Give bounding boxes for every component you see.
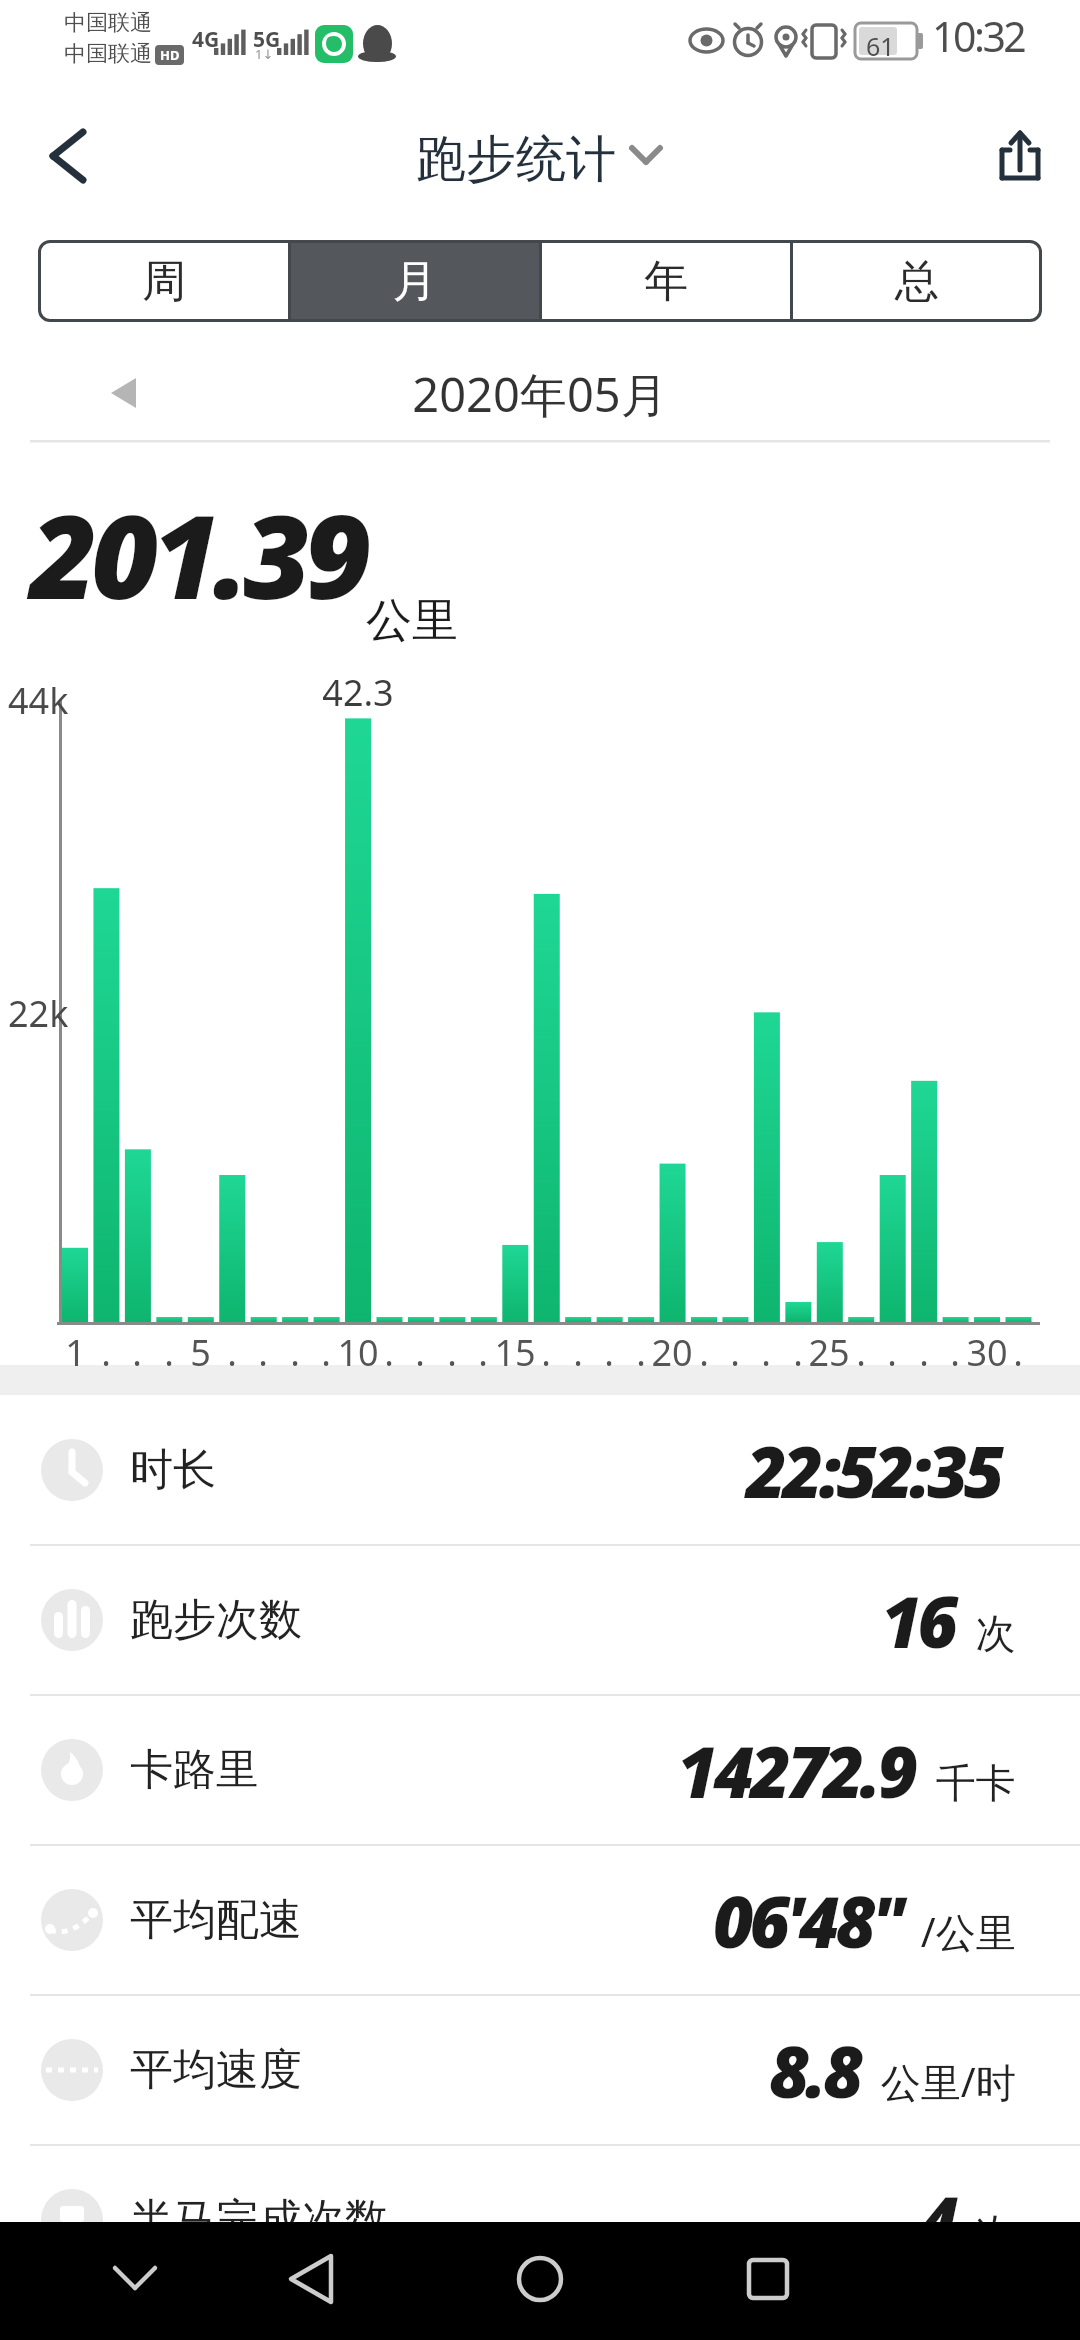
staticText: 10 <box>337 1328 379 1377</box>
staticText: . <box>699 1328 709 1377</box>
button[interactable]: 周 <box>38 240 289 322</box>
staticText: /公里 <box>900 1904 1016 1959</box>
staticText: . <box>1013 1328 1023 1377</box>
staticText: . <box>761 1328 771 1377</box>
staticText: 5G <box>253 25 281 54</box>
staticText: 14272.9 <box>677 1723 915 1818</box>
button[interactable]: 半马完成次数 <box>0 2145 1080 2295</box>
staticText: . <box>793 1328 803 1377</box>
staticText: 卡路里 <box>130 1743 259 1797</box>
staticText: 跑步次数 <box>130 1593 302 1647</box>
staticText: 次 <box>955 1604 1016 1659</box>
staticText: 15 <box>494 1328 536 1377</box>
staticText: 时长 <box>130 1443 216 1497</box>
staticText: 20 <box>651 1328 693 1377</box>
staticText: 25 <box>808 1328 850 1377</box>
button[interactable]: 月 <box>289 240 540 322</box>
staticText: 月 <box>393 254 437 309</box>
staticText: 平均配速 <box>130 1893 302 1947</box>
button[interactable]: 总 <box>791 240 1042 322</box>
staticText: 次 <box>955 2204 1016 2259</box>
staticText: . <box>101 1328 111 1377</box>
staticText: . <box>919 1328 929 1377</box>
staticText: 1 <box>65 1328 86 1377</box>
staticText: . <box>573 1328 583 1377</box>
staticText: 201.39 <box>30 475 366 633</box>
staticText: 4G <box>192 25 220 54</box>
button[interactable] <box>985 118 1060 198</box>
button[interactable] <box>30 115 120 200</box>
staticText: . <box>164 1328 174 1377</box>
staticText: 年 <box>644 254 688 309</box>
staticText: . <box>856 1328 866 1377</box>
staticText: . <box>950 1328 960 1377</box>
staticText: . <box>541 1328 551 1377</box>
button[interactable]: 卡路里 <box>0 1695 1080 1845</box>
staticText: 中国联通 <box>64 40 152 68</box>
staticText: 06'48" <box>713 1873 900 1968</box>
staticText: 22k <box>8 989 69 1038</box>
staticText: 42.3 <box>322 668 394 717</box>
staticText: . <box>290 1328 300 1377</box>
button[interactable]: 平均配速 <box>0 1845 1080 1995</box>
staticText: . <box>132 1328 142 1377</box>
staticText: . <box>636 1328 646 1377</box>
staticText: 中国联通 <box>64 9 152 37</box>
staticText: 16 <box>881 1573 955 1668</box>
button[interactable] <box>270 2248 350 2308</box>
button[interactable] <box>500 2248 580 2308</box>
staticText: 公里 <box>366 592 458 650</box>
staticText: 4 <box>918 2173 955 2268</box>
staticText: 半马完成次数 <box>130 2193 388 2247</box>
staticText: 2020年05月 <box>412 362 668 426</box>
staticText: HD <box>160 46 180 64</box>
button[interactable]: 年 <box>540 240 791 322</box>
staticText: . <box>447 1328 457 1377</box>
staticText: . <box>415 1328 425 1377</box>
staticText: 8.8 <box>769 2023 860 2118</box>
staticText: . <box>730 1328 740 1377</box>
staticText: 44k <box>8 676 69 725</box>
staticText: 61 <box>866 29 895 63</box>
staticText: 千卡 <box>915 1754 1016 1809</box>
staticText: 平均速度 <box>130 2043 302 2097</box>
staticText: . <box>258 1328 268 1377</box>
staticText: . <box>321 1328 331 1377</box>
staticText: . <box>478 1328 488 1377</box>
staticText: . <box>384 1328 394 1377</box>
button[interactable] <box>90 365 160 425</box>
staticText: 总 <box>895 254 939 309</box>
staticText: 5 <box>190 1328 211 1377</box>
button[interactable]: 平均速度 <box>0 1995 1080 2145</box>
button[interactable] <box>730 2248 810 2308</box>
staticText: 跑步统计 <box>416 128 616 191</box>
staticText: . <box>887 1328 897 1377</box>
staticText: . <box>604 1328 614 1377</box>
staticText: 公里/时 <box>860 2054 1016 2109</box>
button[interactable]: 跑步次数 <box>0 1545 1080 1695</box>
staticText: 周 <box>142 254 186 309</box>
staticText: 1↓ <box>255 45 274 63</box>
button[interactable] <box>95 2248 175 2308</box>
staticText: . <box>227 1328 237 1377</box>
button[interactable]: 时长 <box>0 1395 1080 1545</box>
staticText: 22:52:35 <box>746 1423 1001 1518</box>
staticText: 10:32 <box>932 8 1025 64</box>
staticText: 30 <box>966 1328 1008 1377</box>
